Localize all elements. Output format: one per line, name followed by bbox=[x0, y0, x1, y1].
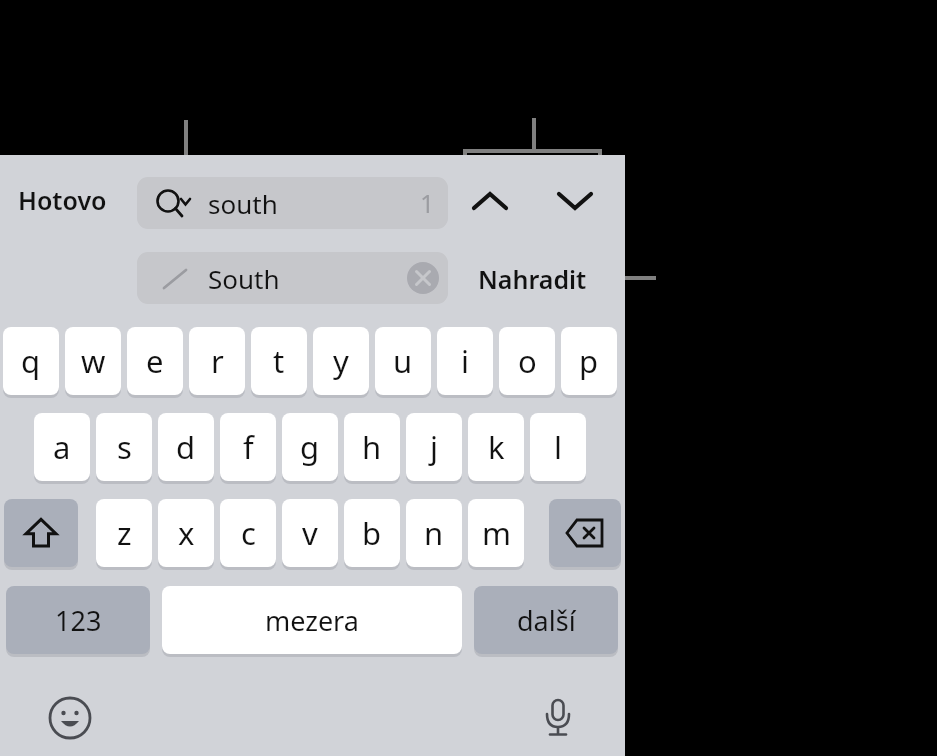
button[interactable]: mezera bbox=[162, 586, 462, 654]
staticText: s bbox=[117, 426, 132, 468]
staticText: South bbox=[208, 261, 280, 296]
button[interactable]: b bbox=[344, 499, 400, 567]
staticText: 123 bbox=[55, 602, 102, 639]
button[interactable]: p bbox=[561, 327, 617, 395]
button[interactable]: f bbox=[220, 413, 276, 481]
button[interactable]: w bbox=[65, 327, 121, 395]
staticText: 1 bbox=[420, 186, 435, 220]
staticText: i bbox=[461, 340, 469, 382]
staticText: j bbox=[430, 426, 438, 468]
button[interactable]: v bbox=[282, 499, 338, 567]
staticText: c bbox=[241, 512, 256, 554]
staticText: další bbox=[517, 602, 576, 639]
staticText: Nahradit bbox=[478, 262, 587, 296]
staticText: r bbox=[211, 340, 224, 382]
staticText: b bbox=[362, 512, 382, 554]
button[interactable]: Clear bbox=[407, 262, 439, 294]
staticText: a bbox=[53, 426, 71, 468]
staticText: e bbox=[146, 340, 164, 382]
button[interactable]: Dictate bbox=[530, 690, 586, 746]
button[interactable]: d bbox=[158, 413, 214, 481]
button[interactable]: Shift bbox=[4, 499, 78, 567]
button[interactable]: a bbox=[34, 413, 90, 481]
staticText: l bbox=[554, 426, 562, 468]
button[interactable]: n bbox=[406, 499, 462, 567]
button[interactable]: s bbox=[96, 413, 152, 481]
button[interactable]: c bbox=[220, 499, 276, 567]
staticText: u bbox=[393, 340, 413, 382]
button[interactable]: 123 bbox=[6, 586, 150, 654]
button[interactable]: h bbox=[344, 413, 400, 481]
staticText: z bbox=[117, 512, 132, 554]
staticText: w bbox=[81, 340, 106, 382]
button[interactable]: x bbox=[158, 499, 214, 567]
button[interactable]: Next result bbox=[547, 178, 603, 224]
button[interactable]: Emoji bbox=[42, 690, 98, 746]
staticText: f bbox=[243, 426, 254, 468]
staticText: m bbox=[482, 512, 511, 554]
button[interactable]: Hotovo bbox=[18, 177, 122, 223]
button[interactable]: Previous result bbox=[462, 178, 518, 224]
button[interactable]: Nahradit bbox=[478, 256, 592, 302]
button[interactable]: e bbox=[127, 327, 183, 395]
staticText: o bbox=[518, 340, 537, 382]
button[interactable]: l bbox=[530, 413, 586, 481]
staticText: q bbox=[21, 340, 41, 382]
button[interactable]: m bbox=[468, 499, 524, 567]
staticText: n bbox=[424, 512, 444, 554]
staticText: mezera bbox=[265, 602, 359, 639]
staticText: v bbox=[302, 512, 318, 554]
staticText: g bbox=[300, 426, 320, 468]
staticText: y bbox=[333, 340, 349, 382]
button[interactable]: q bbox=[3, 327, 59, 395]
button[interactable]: o bbox=[499, 327, 555, 395]
staticText: h bbox=[362, 426, 382, 468]
button[interactable]: j bbox=[406, 413, 462, 481]
staticText: Hotovo bbox=[18, 183, 107, 217]
button[interactable]: y bbox=[313, 327, 369, 395]
button[interactable]: Backspace bbox=[549, 499, 621, 567]
staticText: x bbox=[178, 512, 195, 554]
button[interactable]: i bbox=[437, 327, 493, 395]
button[interactable]: r bbox=[189, 327, 245, 395]
button[interactable]: k bbox=[468, 413, 524, 481]
staticText: d bbox=[176, 426, 196, 468]
staticText: south bbox=[208, 186, 278, 221]
button[interactable]: g bbox=[282, 413, 338, 481]
button[interactable]: další bbox=[474, 586, 618, 654]
staticText: k bbox=[488, 426, 505, 468]
staticText: t bbox=[273, 340, 285, 382]
button[interactable]: south bbox=[137, 177, 448, 229]
button[interactable]: South bbox=[137, 252, 448, 304]
staticText: p bbox=[579, 340, 599, 382]
button[interactable]: t bbox=[251, 327, 307, 395]
button[interactable]: u bbox=[375, 327, 431, 395]
button[interactable]: z bbox=[96, 499, 152, 567]
